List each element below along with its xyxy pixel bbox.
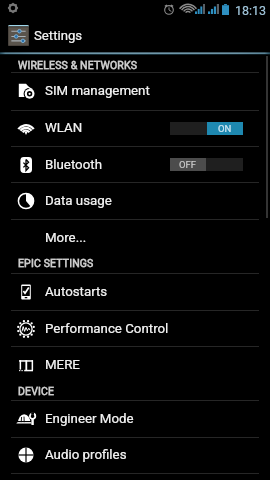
staticText: Audio profiles bbox=[45, 447, 127, 463]
staticText: Autostarts bbox=[45, 284, 108, 300]
button[interactable]: Bluetooth bbox=[0, 146, 270, 183]
staticText: DEVICE bbox=[18, 385, 55, 397]
staticText: WLAN bbox=[45, 120, 83, 136]
button[interactable]: Engineer Mode bbox=[0, 400, 270, 438]
staticText: 18:13 bbox=[235, 3, 267, 18]
staticText: WIRELESS & NETWORKS bbox=[18, 59, 138, 71]
staticText: ON bbox=[218, 123, 232, 134]
button[interactable]: Audio profiles bbox=[0, 437, 270, 473]
button[interactable]: Switch off bbox=[170, 158, 243, 171]
staticText: Bluetooth bbox=[45, 157, 102, 173]
button[interactable]: Data usage bbox=[0, 182, 270, 219]
staticText: Settings bbox=[34, 28, 83, 43]
button[interactable]: Autostarts bbox=[0, 273, 270, 310]
staticText: More... bbox=[45, 230, 87, 246]
button[interactable]: WLAN bbox=[0, 110, 270, 146]
staticText: Performance Control bbox=[45, 321, 169, 337]
button[interactable]: More... bbox=[0, 219, 270, 256]
button[interactable]: Performance Control bbox=[0, 310, 270, 347]
staticText: SIM management bbox=[45, 83, 150, 99]
button[interactable]: MERE bbox=[0, 346, 270, 383]
staticText: MERE bbox=[45, 357, 80, 373]
button[interactable]: Switch on bbox=[170, 122, 243, 135]
staticText: EPIC SETTINGS bbox=[18, 257, 94, 269]
staticText: Data usage bbox=[45, 193, 112, 209]
button[interactable]: SIM management bbox=[0, 72, 270, 110]
staticText: Engineer Mode bbox=[45, 411, 134, 427]
staticText: OFF bbox=[179, 159, 197, 170]
